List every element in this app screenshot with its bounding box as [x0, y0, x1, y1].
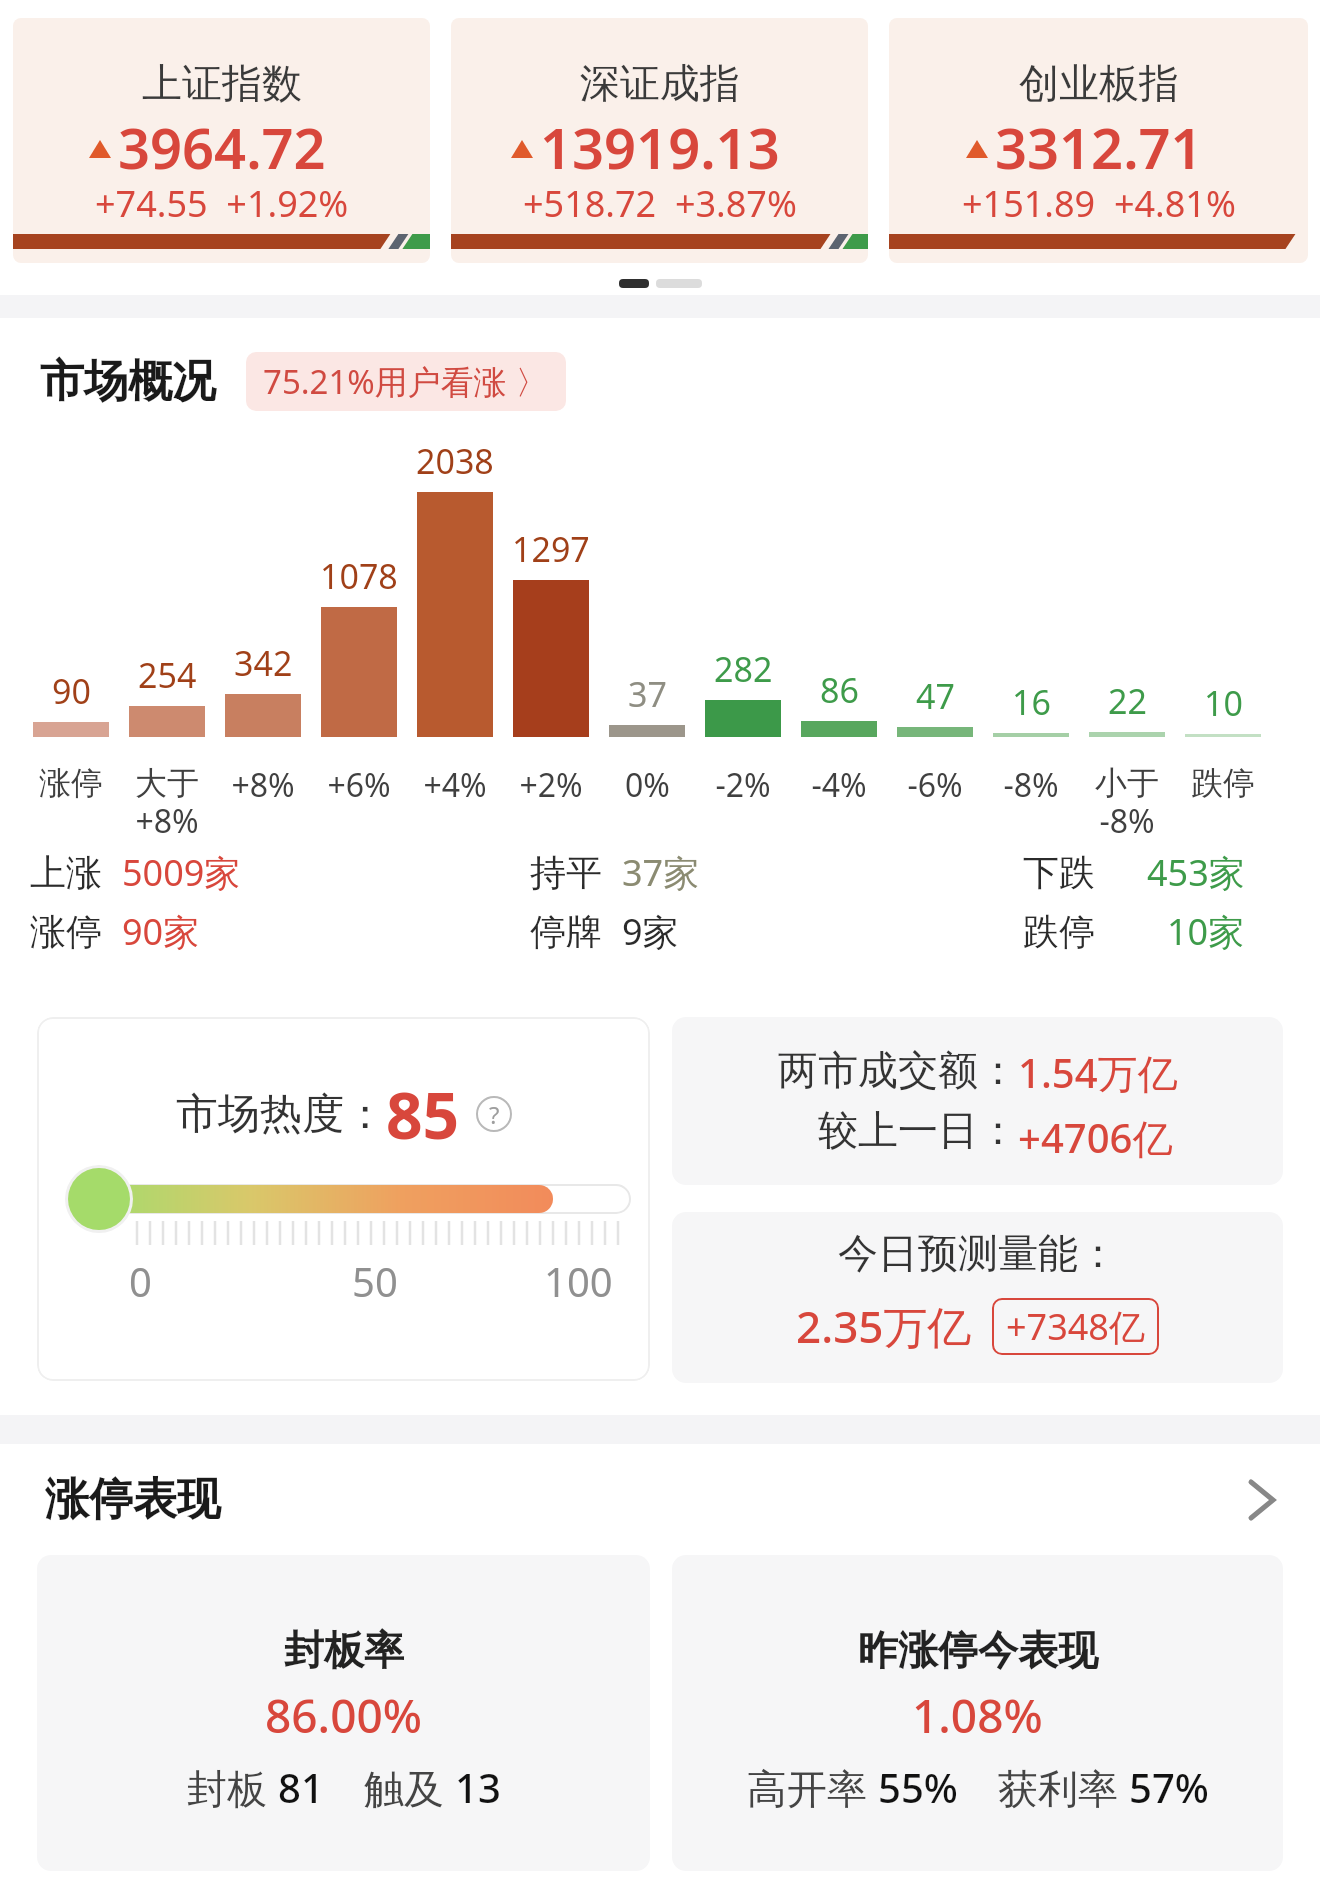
staticText: 获利率: [998, 1760, 1129, 1815]
staticText: 3312.71: [995, 109, 1203, 185]
staticText: 453家: [1147, 848, 1245, 897]
staticText: 1078: [320, 553, 398, 599]
staticText: +2%: [519, 763, 583, 807]
staticText: +151.89 +4.81%: [962, 179, 1236, 228]
staticText: +518.72 +3.87%: [523, 179, 797, 228]
staticText: 跌停: [1191, 763, 1255, 803]
staticText: 254: [138, 652, 197, 698]
button[interactable]: 昨涨停今表现: [672, 1555, 1283, 1871]
staticText: 昨涨停今表现: [858, 1625, 1098, 1675]
staticText: 50: [352, 1254, 398, 1308]
staticText: 市场概况: [40, 354, 216, 409]
staticText: -4%: [811, 763, 867, 807]
staticText: 9家: [622, 907, 679, 956]
staticText: 13919.13: [540, 109, 780, 185]
button[interactable]: 封板率: [37, 1555, 650, 1871]
staticText: 13: [455, 1760, 501, 1814]
staticText: 22: [1108, 678, 1147, 724]
staticText: 47: [916, 673, 955, 719]
staticText: 深证成指: [580, 58, 740, 108]
button[interactable]: 两市成交额：: [672, 1017, 1283, 1185]
staticText: 75.21%用户看涨 〉: [263, 359, 549, 404]
staticText: 涨停: [39, 763, 103, 803]
button[interactable]: 市场热度：: [37, 1017, 650, 1381]
staticText: 停牌: [530, 909, 602, 954]
staticText: 小于 -8%: [1095, 763, 1159, 842]
staticText: 57%: [1129, 1760, 1209, 1814]
staticText: +7348亿: [1006, 1302, 1145, 1351]
staticText: 55%: [878, 1760, 958, 1814]
staticText: ?: [489, 1098, 500, 1131]
staticText: 342: [234, 640, 293, 686]
staticText: +8%: [231, 763, 295, 807]
staticText: 封板: [187, 1760, 278, 1815]
staticText: 触及: [364, 1760, 455, 1815]
button[interactable]: 上证指数: [13, 18, 430, 263]
staticText: 封板率: [284, 1625, 404, 1675]
button[interactable]: 今日预测量能：: [672, 1212, 1283, 1383]
staticText: 持平: [530, 850, 602, 895]
staticText: 37: [628, 671, 667, 717]
staticText: 90: [52, 668, 91, 714]
staticText: 81: [278, 1760, 324, 1814]
staticText: 上涨: [30, 850, 102, 895]
staticText: 市场热度：: [176, 1088, 386, 1141]
staticText: 今日预测量能：: [838, 1228, 1118, 1278]
staticText: 涨停表现: [45, 1472, 221, 1527]
button[interactable]: 深证成指: [451, 18, 868, 263]
staticText: -8%: [1003, 763, 1059, 807]
staticText: 两市成交额：: [778, 1045, 1018, 1095]
staticText: 3964.72: [118, 109, 326, 185]
staticText: 较上一日：: [818, 1105, 1018, 1155]
staticText: 282: [714, 646, 773, 692]
staticText: 2038: [416, 438, 494, 484]
staticText: +4%: [423, 763, 487, 807]
staticText: 85: [386, 1071, 460, 1158]
staticText: 涨停: [30, 909, 102, 954]
staticText: 高开率: [747, 1760, 878, 1815]
staticText: 下跌: [1023, 850, 1095, 895]
staticText: +74.55 +1.92%: [95, 179, 349, 228]
button[interactable]: 涨停表现: [0, 1472, 1320, 1527]
staticText: 16: [1012, 679, 1051, 725]
staticText: 10家: [1167, 907, 1245, 956]
staticText: 86: [820, 667, 859, 713]
staticText: 37家: [622, 848, 700, 897]
staticText: 上证指数: [142, 58, 302, 108]
staticText: +6%: [327, 763, 391, 807]
button[interactable]: 创业板指: [889, 18, 1308, 263]
staticText: 创业板指: [1019, 58, 1179, 108]
staticText: 0: [129, 1254, 152, 1308]
staticText: 5009家: [122, 848, 241, 897]
staticText: 1.54万亿: [1018, 1045, 1178, 1100]
staticText: +4706亿: [1018, 1110, 1173, 1165]
staticText: 86.00%: [265, 1684, 422, 1747]
staticText: 跌停: [1023, 909, 1095, 954]
staticText: 0%: [625, 763, 670, 807]
staticText: 大于 +8%: [135, 763, 199, 842]
staticText: 100: [544, 1254, 613, 1308]
button[interactable]: 75.21%用户看涨 〉: [246, 352, 566, 411]
staticText: 1.08%: [912, 1684, 1043, 1747]
staticText: 1297: [512, 526, 590, 572]
staticText: -6%: [907, 763, 963, 807]
staticText: 90家: [122, 907, 200, 956]
staticText: 10: [1204, 680, 1243, 726]
staticText: 2.35万亿: [796, 1296, 972, 1356]
staticText: -2%: [715, 763, 771, 807]
